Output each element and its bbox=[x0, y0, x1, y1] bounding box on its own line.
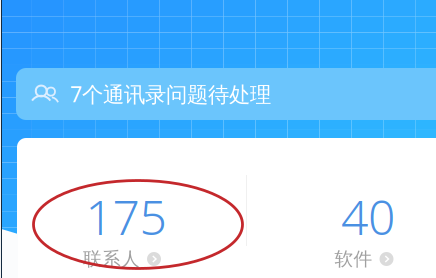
button[interactable]: 40 bbox=[263, 196, 436, 268]
button[interactable]: 175 bbox=[21, 196, 231, 268]
staticText: 40 bbox=[341, 185, 395, 248]
staticText: 175 bbox=[85, 185, 166, 248]
button[interactable]: 7个通讯录问题待处理 bbox=[16, 68, 436, 120]
staticText: 联系人 bbox=[83, 247, 140, 270]
staticText: 软件 bbox=[334, 247, 372, 270]
staticText: 7个通讯录问题待处理 bbox=[70, 80, 271, 108]
